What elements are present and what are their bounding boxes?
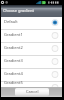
- button[interactable]: Gradient2: [1, 43, 62, 55]
- staticText: Gradient1: [4, 32, 50, 37]
- button[interactable]: Gradient5: [1, 82, 62, 87]
- button[interactable]: Gradient3: [1, 56, 62, 68]
- staticText: Default: [4, 19, 50, 24]
- staticText: Gradient5: [4, 80, 50, 85]
- button[interactable]: Default: [1, 17, 62, 29]
- staticText: Gradient4: [4, 71, 50, 76]
- button[interactable]: Gradient1: [1, 30, 62, 42]
- staticText: Choose gradient: [3, 8, 34, 13]
- staticText: Gradient2: [4, 45, 50, 50]
- button[interactable]: Cancel: [15, 88, 49, 96]
- staticText: Gradient3: [4, 58, 50, 63]
- button[interactable]: Gradient4: [1, 69, 62, 81]
- staticText: Cancel: [26, 89, 39, 94]
